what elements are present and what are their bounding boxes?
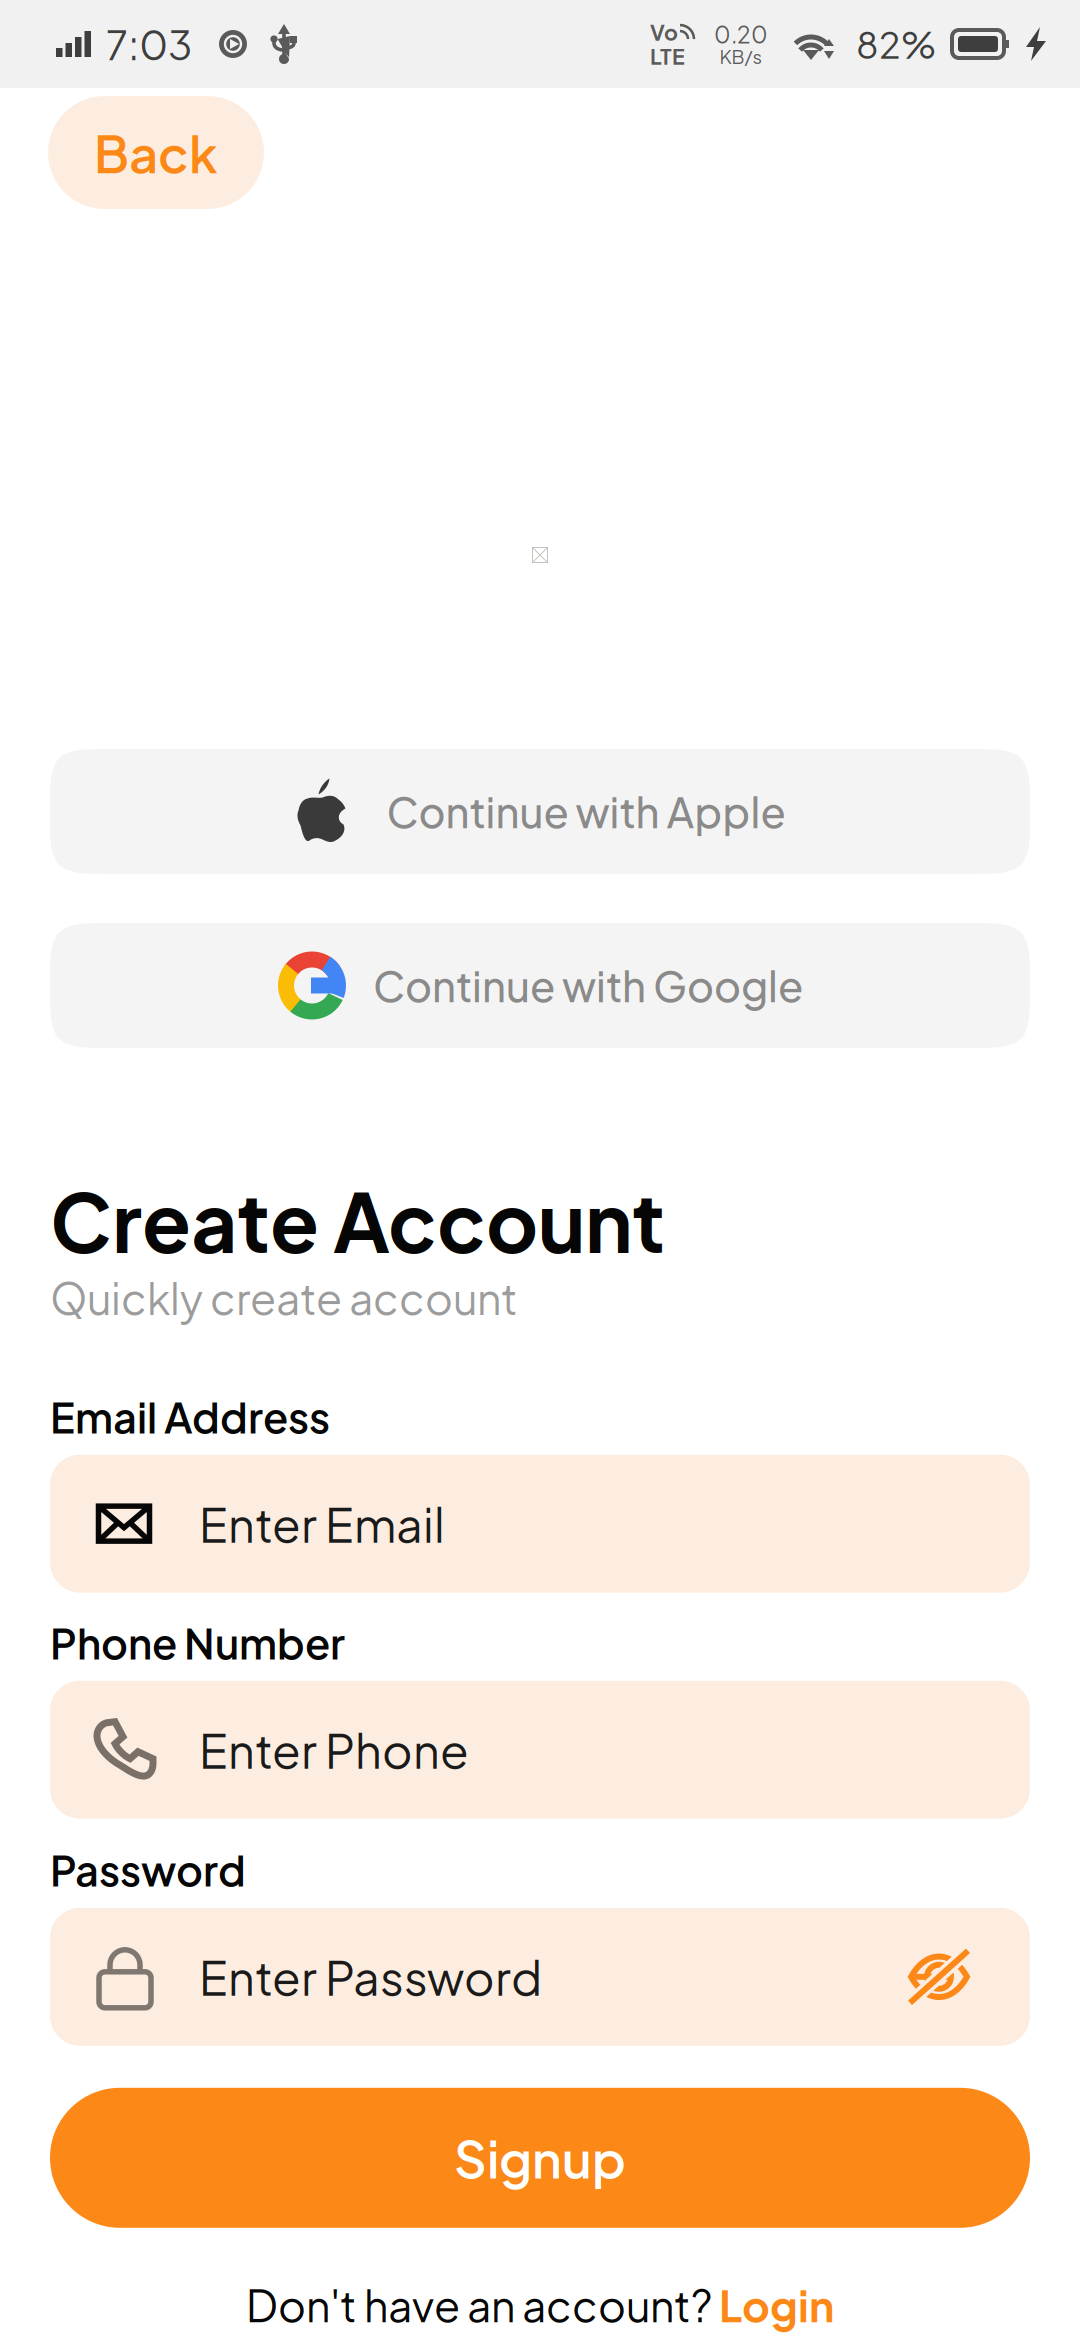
staticText: Continue with Apple [386,785,785,838]
button[interactable]: Enter Email [50,1455,1030,1593]
staticText: Phone Number [50,1617,345,1669]
staticText: KB/s [719,44,762,68]
staticText: Signup [454,2126,626,2190]
staticText: Quickly create account [50,1271,518,1325]
staticText: LTE [650,42,685,69]
staticText: 0.20 [714,20,768,49]
staticText: 7:03 [106,19,192,69]
staticText: Email Address [50,1391,330,1443]
staticText: Password [50,1844,246,1896]
staticText: Vo [650,19,678,45]
staticText: Enter Email [199,1494,445,1553]
staticText: Back [94,121,218,184]
staticText: Continue with Google [373,959,803,1012]
staticText: Enter Phone [199,1720,469,1779]
staticText: Don't have an account? [246,2278,719,2332]
staticText: Create Account [50,1170,665,1271]
button[interactable]: Enter Password [50,1908,1030,2046]
button[interactable]: Don't have an account? [50,2268,1030,2340]
staticText: 82% [856,21,936,67]
button[interactable]: Back [48,96,264,209]
button[interactable]: Signup [50,2088,1030,2228]
image [532,547,548,563]
staticText: Login [719,2278,834,2332]
button[interactable]: Enter Phone [50,1681,1030,1819]
button[interactable]: Continue with Google [50,923,1030,1048]
staticText: Enter Password [199,1947,542,2006]
button[interactable]: Continue with Apple [50,749,1030,874]
